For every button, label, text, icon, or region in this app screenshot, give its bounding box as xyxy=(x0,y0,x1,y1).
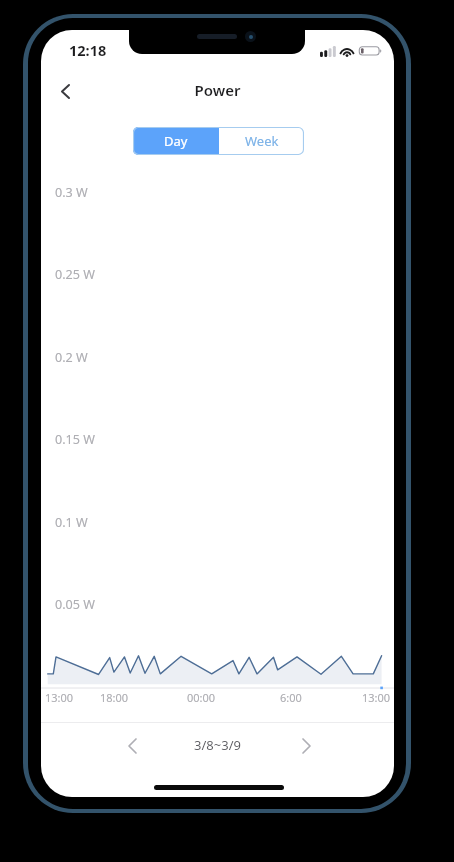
staticText: 0.2 W xyxy=(55,349,88,366)
button[interactable]: Week xyxy=(219,127,304,155)
staticText: 0.15 W xyxy=(55,431,95,448)
staticText: Week xyxy=(245,132,279,150)
button[interactable]: Previous period xyxy=(116,730,148,762)
staticText: 3/8~3/9 xyxy=(41,736,394,754)
staticText: 6:00 xyxy=(280,690,302,705)
staticText: 0.05 W xyxy=(55,596,95,613)
staticText: 0.25 W xyxy=(55,266,95,283)
staticText: 13:00 xyxy=(362,690,391,705)
staticText: 12:18 xyxy=(69,40,107,60)
button[interactable]: Next period xyxy=(290,730,322,762)
staticText: 13:00 xyxy=(45,690,74,705)
button[interactable]: Back xyxy=(49,75,81,107)
staticText: Power xyxy=(41,80,394,100)
staticText: 00:00 xyxy=(187,690,216,705)
staticText: 0.1 W xyxy=(55,514,88,531)
staticText: Day xyxy=(164,132,188,150)
button[interactable]: Day xyxy=(133,127,219,155)
staticText: 0.3 W xyxy=(55,184,88,201)
staticText: 18:00 xyxy=(100,690,129,705)
